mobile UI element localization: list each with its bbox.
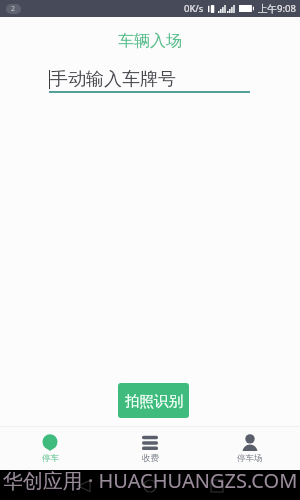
button[interactable]: Back [74,476,94,496]
staticText: 收费 [142,453,159,464]
staticText: 2 [11,4,16,14]
button[interactable]: Recent apps [207,476,227,496]
button[interactable]: 停车 [0,427,100,470]
button[interactable]: 拍照识别 [118,383,189,418]
button[interactable]: 手动输入车牌号 [49,68,250,93]
button[interactable]: 停车场 [200,427,300,470]
staticText: 停车 [42,453,59,464]
staticText: 上午9:08 [258,2,296,15]
staticText: 手动输入车牌号 [50,68,176,91]
staticText: 车辆入场 [0,31,300,51]
button[interactable]: 收费 [100,427,200,470]
staticText: 0K/s [184,2,204,15]
staticText: 停车场 [237,453,263,464]
button[interactable]: Home [140,476,160,496]
staticText: 拍照识别 [125,392,183,410]
staticText: 华创应用 · HUACHUANGZS.COM [0,467,300,494]
